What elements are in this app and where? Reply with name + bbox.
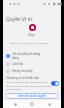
- staticText: Chỉ cho phép khi đang: [12, 52, 41, 56]
- staticText: Không cho phép: [12, 69, 33, 73]
- staticText: dùng: [12, 56, 19, 60]
- button[interactable]: Recents: [44, 100, 54, 108]
- button[interactable]: Xem tất cả các quyền: [5, 93, 59, 99]
- button[interactable]: Luôn hỏi: [3, 60, 61, 67]
- button[interactable]: Không cho phép: [3, 67, 61, 74]
- staticText: Maps: [28, 33, 36, 37]
- button[interactable]: Back: [10, 100, 20, 108]
- button[interactable]: Chỉ cho phép khi đang: [3, 51, 61, 60]
- staticText: Khi tính năng này tắt, các ứng dụng có t…: [6, 81, 51, 90]
- staticText: Quyền truy cập vị trí cho ứng dụng: [10, 41, 50, 44]
- button[interactable]: Home: [27, 100, 37, 108]
- staticText: Quyền Vị trí: [6, 16, 33, 23]
- staticText: Xem tất cả các quyền: [18, 94, 46, 98]
- staticText: Luôn hỏi: [12, 62, 24, 66]
- staticText: Sử dụng vị trí chính xác: [6, 76, 39, 80]
- button[interactable]: Sử dụng vị trí chính xác: [3, 76, 61, 90]
